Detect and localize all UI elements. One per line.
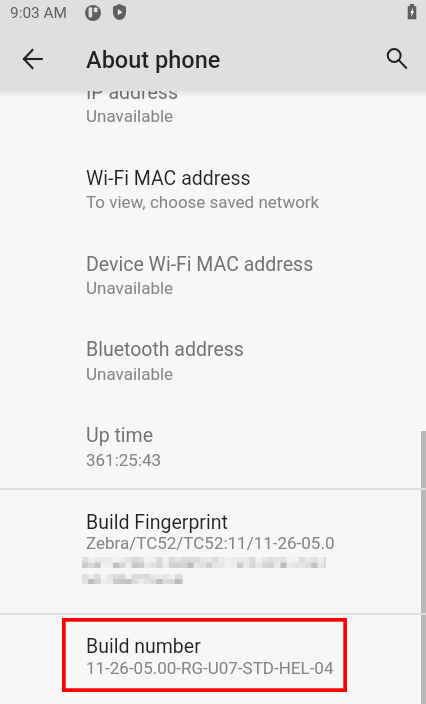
staticText: Build Fingerprint bbox=[86, 511, 228, 534]
button[interactable]: Navigate up bbox=[9, 35, 57, 83]
staticText: Bluetooth address bbox=[86, 338, 244, 361]
staticText: Unavailable bbox=[86, 106, 174, 126]
button[interactable]: Wi-Fi MAC address bbox=[0, 136, 426, 222]
button[interactable]: Bluetooth address bbox=[0, 308, 426, 394]
button[interactable]: Build Fingerprint bbox=[0, 489, 426, 613]
staticText: Zebra/TC52/TC52:11/11-26-05.0 bbox=[86, 533, 335, 553]
staticText: IP address bbox=[86, 81, 178, 104]
staticText: Up time bbox=[86, 424, 153, 447]
staticText: Unavailable bbox=[86, 278, 174, 298]
staticText: Unavailable bbox=[86, 364, 174, 384]
staticText: 361:25:43 bbox=[86, 450, 162, 470]
staticText: About phone bbox=[86, 46, 221, 74]
button[interactable]: IP address bbox=[0, 80, 426, 136]
button[interactable]: Up time bbox=[0, 394, 426, 480]
button[interactable]: Build number bbox=[0, 614, 426, 704]
staticText: 9:03 AM bbox=[10, 4, 67, 22]
button[interactable]: Device Wi-Fi MAC address bbox=[0, 222, 426, 308]
staticText: Wi-Fi MAC address bbox=[86, 167, 251, 190]
staticText: To view, choose saved network bbox=[86, 192, 320, 212]
staticText: Build number bbox=[86, 635, 201, 658]
staticText: Device Wi-Fi MAC address bbox=[86, 253, 314, 276]
staticText: 11-26-05.00-RG-U07-STD-HEL-04 bbox=[86, 658, 334, 678]
button[interactable]: Search bbox=[371, 34, 419, 82]
